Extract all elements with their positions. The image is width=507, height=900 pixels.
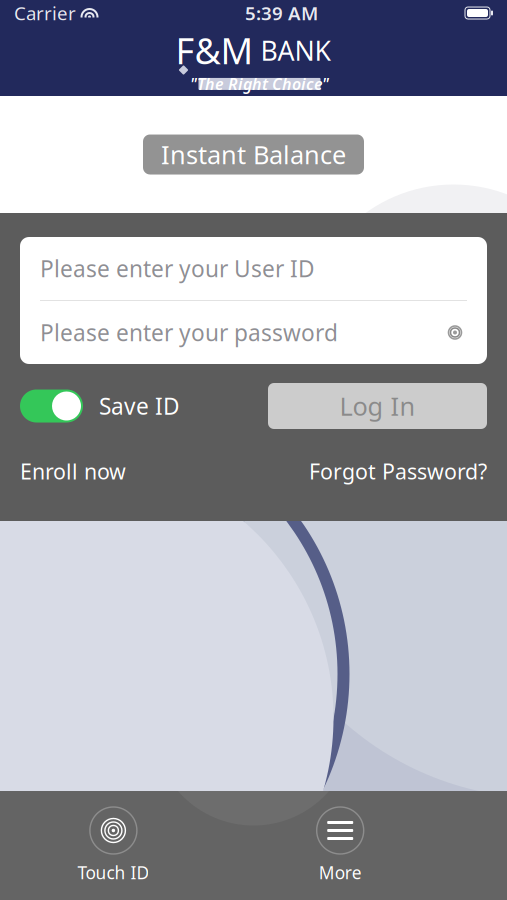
- button[interactable]: Save ID: [0, 383, 180, 429]
- staticText: Carrier: [14, 1, 76, 25]
- staticText: BANK: [253, 33, 331, 68]
- staticText: "The Right Choice": [190, 73, 329, 94]
- button[interactable]: Touch ID: [53, 804, 173, 886]
- staticText: Save ID: [99, 391, 180, 421]
- button[interactable]: Enroll now: [20, 451, 126, 491]
- staticText: F&M: [175, 26, 253, 74]
- staticText: 5:39 AM: [245, 1, 318, 25]
- button[interactable]: Forgot Password?: [309, 451, 487, 491]
- button[interactable]: Instant Balance: [143, 134, 364, 174]
- staticText: More: [319, 861, 362, 884]
- staticText: Forgot Password?: [309, 457, 487, 485]
- button[interactable]: Log In: [268, 383, 487, 429]
- staticText: Enroll now: [20, 457, 126, 485]
- staticText: Please enter your User ID: [40, 253, 315, 283]
- staticText: Log In: [339, 389, 415, 423]
- staticText: Please enter your password: [40, 317, 338, 347]
- button[interactable]: Please enter your password: [20, 301, 487, 364]
- staticText: Instant Balance: [161, 138, 346, 171]
- button[interactable]: Please enter your User ID: [20, 237, 487, 300]
- button[interactable]: More: [280, 804, 400, 886]
- staticText: Touch ID: [77, 861, 149, 884]
